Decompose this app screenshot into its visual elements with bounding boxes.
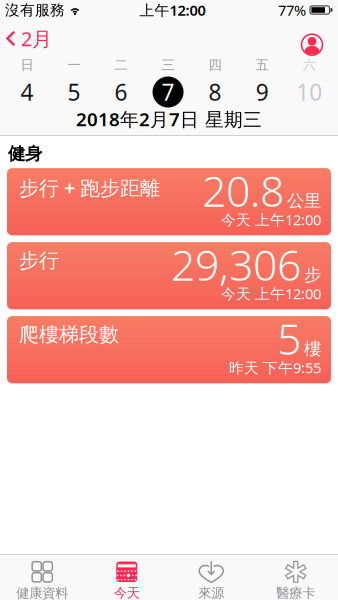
staticText: 步行 + 跑步距離 [19, 174, 160, 201]
staticText: 醫療卡 [276, 585, 315, 600]
staticText: 日 [20, 57, 33, 73]
staticText: 一 [67, 57, 80, 73]
button[interactable]: 步行 + 跑步距離 [7, 168, 331, 235]
staticText: 20.8 [202, 162, 284, 218]
staticText: 步 [304, 264, 321, 285]
staticText: 五 [256, 57, 269, 73]
button[interactable]: 步行 [7, 242, 331, 309]
staticText: 來源 [198, 585, 224, 600]
button[interactable]: 10 [286, 77, 333, 107]
staticText: 沒有服務 [5, 1, 65, 19]
staticText: 二 [114, 57, 127, 73]
staticText: 昨天 下午9:55 [229, 358, 321, 377]
staticText: 今天 [114, 585, 140, 600]
button[interactable]: 健康資料 [0, 555, 84, 600]
staticText: 6 [114, 77, 127, 107]
staticText: 今天 上午12:00 [221, 284, 321, 303]
staticText: 9 [256, 77, 269, 107]
staticText: 29,306 [171, 236, 301, 292]
staticText: 樓 [304, 338, 321, 359]
staticText: 10 [296, 77, 322, 107]
staticText: 5 [67, 77, 80, 107]
staticText: 四 [209, 57, 222, 73]
staticText: 2月 [21, 25, 52, 52]
button[interactable]: 8 [192, 77, 239, 107]
staticText: 步行 [19, 248, 59, 273]
button[interactable]: 6 [97, 77, 144, 107]
staticText: 六 [303, 57, 316, 73]
staticText: 5 [277, 310, 301, 366]
button[interactable]: 個人資料 [301, 34, 338, 55]
button[interactable]: 7 [144, 76, 191, 107]
button[interactable]: 來源 [169, 555, 253, 600]
staticText: 爬樓梯段數 [19, 322, 119, 347]
staticText: 公里 [287, 190, 321, 211]
button[interactable]: 4 [3, 77, 50, 107]
button[interactable]: 爬樓梯段數 [7, 316, 331, 383]
staticText: 今天 上午12:00 [221, 210, 321, 229]
staticText: 上午12:00 [139, 0, 205, 20]
staticText: 健康資料 [16, 585, 68, 600]
staticText: 77% [278, 0, 306, 20]
button[interactable]: 5 [50, 77, 97, 107]
button[interactable]: 2月 [0, 25, 52, 52]
staticText: 三 [162, 57, 175, 73]
staticText: 7 [162, 77, 175, 107]
staticText: 健身 [8, 143, 42, 164]
button[interactable]: 今天 [84, 555, 169, 600]
staticText: 8 [209, 77, 222, 107]
staticText: 2018年2月7日 星期三 [76, 107, 262, 131]
button[interactable]: 9 [239, 77, 286, 107]
button[interactable]: 醫療卡 [253, 555, 338, 600]
staticText: 4 [20, 77, 33, 107]
